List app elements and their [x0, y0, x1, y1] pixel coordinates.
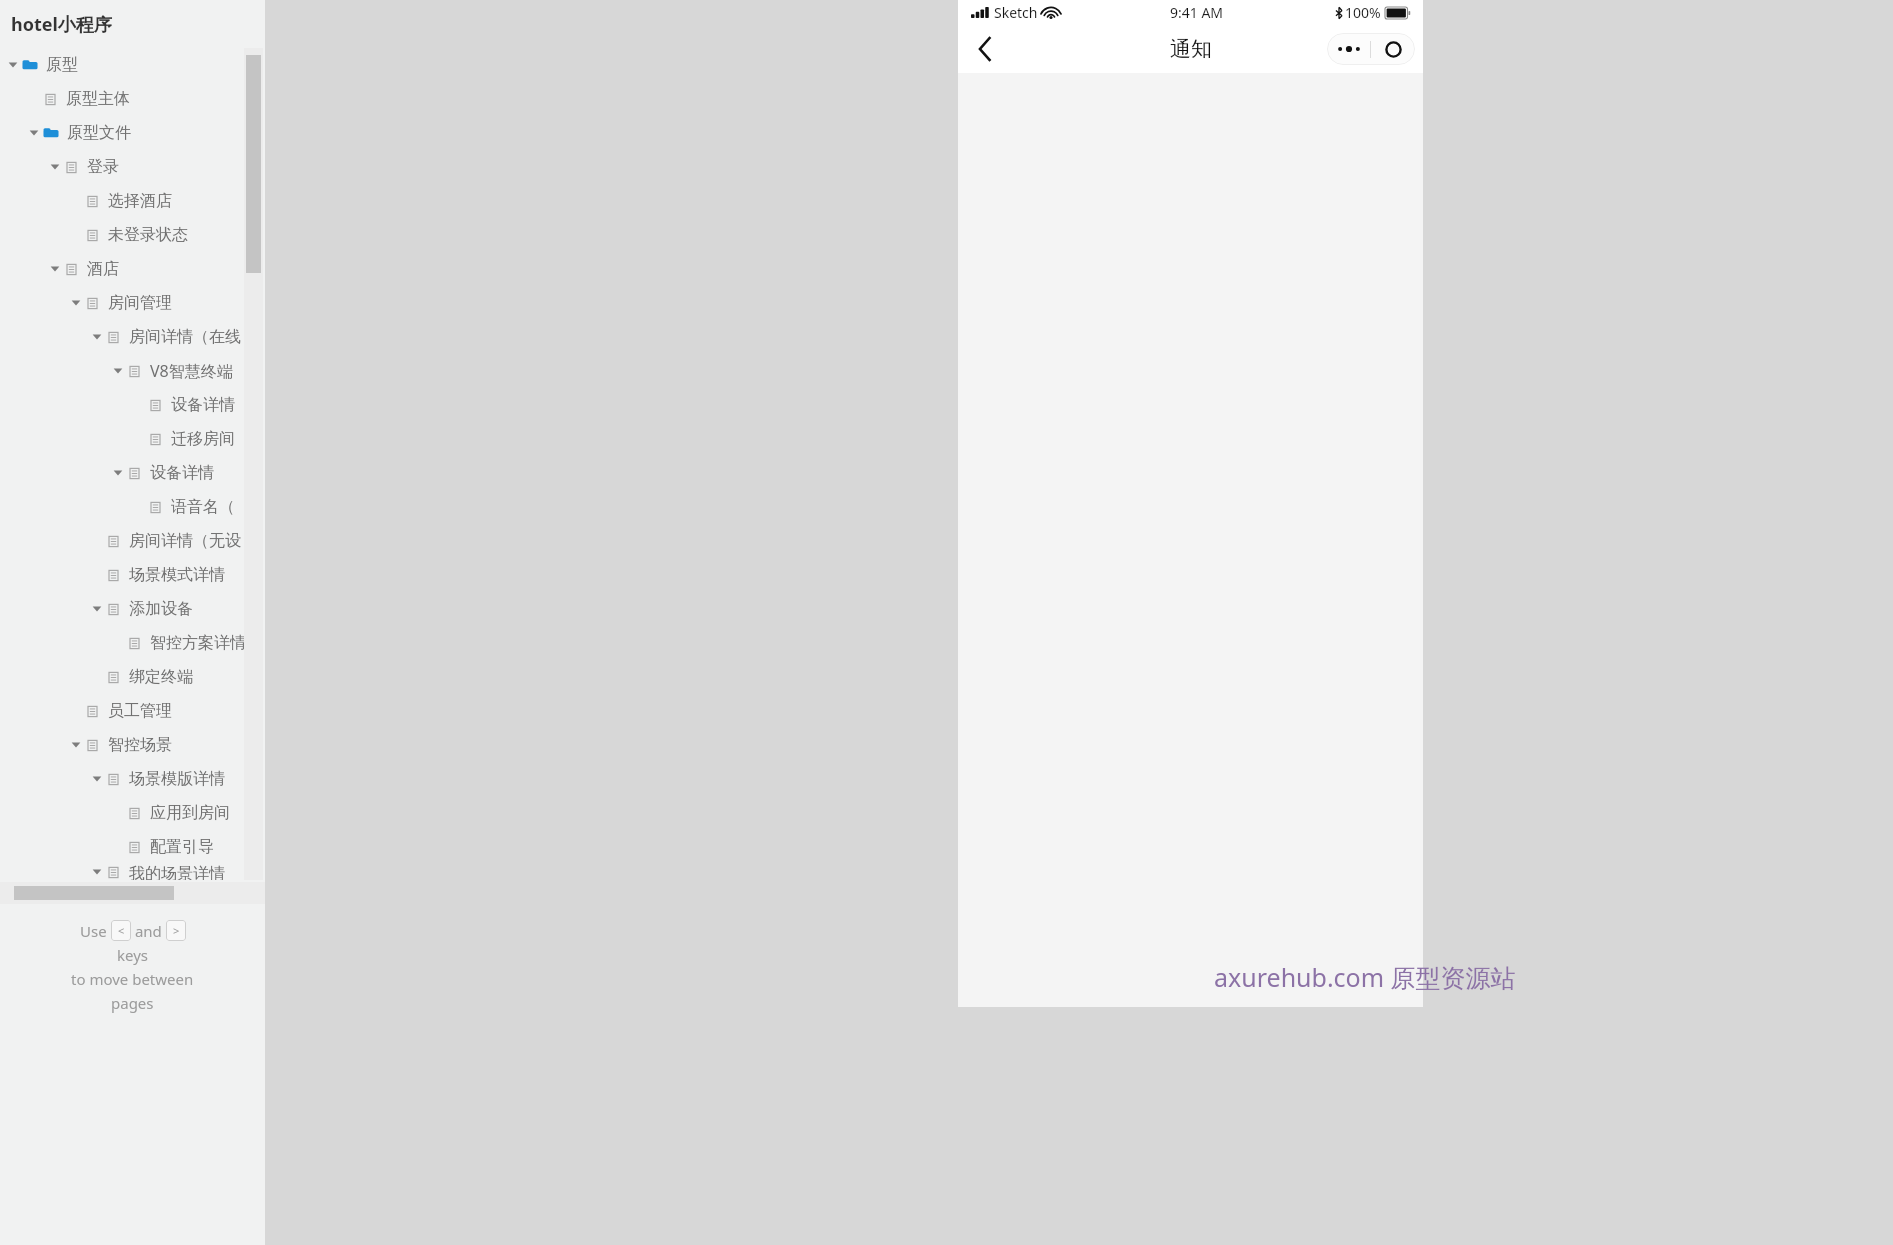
- button[interactable]: 登录: [0, 150, 265, 184]
- staticText: hotel小程序: [11, 12, 112, 37]
- button[interactable]: 设备详情: [0, 456, 265, 490]
- staticText: 原型: [46, 55, 78, 75]
- staticText: 绑定终端: [129, 667, 193, 687]
- button[interactable]: 迁移房间: [0, 422, 265, 456]
- button[interactable]: 场景模版详情: [0, 762, 265, 796]
- button[interactable]: 未登录状态: [0, 218, 265, 252]
- button[interactable]: V8智慧终端: [0, 354, 265, 388]
- staticText: and: [131, 921, 166, 941]
- button[interactable]: 绑定终端: [0, 660, 265, 694]
- staticText: 原型主体: [66, 89, 130, 109]
- staticText: 我的场景详情: [129, 864, 225, 880]
- staticText: 100%: [1345, 3, 1381, 22]
- button[interactable]: 原型主体: [0, 82, 265, 116]
- staticText: <: [118, 923, 125, 938]
- button[interactable]: 设备详情: [0, 388, 265, 422]
- staticText: keys: [117, 945, 149, 965]
- staticText: to move between: [71, 969, 194, 989]
- staticText: 智控场景: [108, 735, 172, 755]
- button[interactable]: 智控场景: [0, 728, 265, 762]
- button[interactable]: 原型文件: [0, 116, 265, 150]
- staticText: 员工管理: [108, 701, 172, 721]
- staticText: 未登录状态: [108, 225, 188, 245]
- button[interactable]: 应用到房间: [0, 796, 265, 830]
- button[interactable]: 房间详情（无设: [0, 524, 265, 558]
- staticText: V8智慧终端: [150, 360, 233, 382]
- staticText: 迁移房间: [171, 429, 235, 449]
- staticText: 场景模版详情: [129, 769, 225, 789]
- button[interactable]: 选择酒店: [0, 184, 265, 218]
- staticText: 智控方案详情: [150, 633, 246, 653]
- button[interactable]: 酒店: [0, 252, 265, 286]
- button[interactable]: 场景模式详情: [0, 558, 265, 592]
- staticText: 设备详情: [150, 463, 214, 483]
- staticText: 场景模式详情: [129, 565, 225, 585]
- button[interactable]: 员工管理: [0, 694, 265, 728]
- button[interactable]: 原型: [0, 48, 265, 82]
- staticText: 原型文件: [67, 123, 131, 143]
- staticText: Use: [80, 921, 111, 941]
- staticText: 酒店: [87, 259, 119, 279]
- staticText: 房间详情（无设: [129, 531, 241, 551]
- staticText: 房间管理: [108, 293, 172, 313]
- staticText: 设备详情: [171, 395, 235, 415]
- button[interactable]: 房间管理: [0, 286, 265, 320]
- button[interactable]: 配置引导: [0, 830, 265, 864]
- button[interactable]: 房间详情（在线: [0, 320, 265, 354]
- staticText: >: [173, 923, 180, 938]
- staticText: 配置引导: [150, 837, 214, 857]
- button[interactable]: 添加设备: [0, 592, 265, 626]
- button[interactable]: Menu: [1327, 33, 1415, 65]
- staticText: Sketch: [994, 3, 1038, 22]
- staticText: pages: [111, 993, 154, 1013]
- staticText: axurehub.com 原型资源站: [1214, 960, 1516, 994]
- button[interactable]: 智控方案详情: [0, 626, 265, 660]
- button[interactable]: 语音名（: [0, 490, 265, 524]
- staticText: 添加设备: [129, 599, 193, 619]
- staticText: 房间详情（在线: [129, 327, 241, 347]
- staticText: 9:41 AM: [1170, 3, 1224, 22]
- staticText: 语音名（: [171, 497, 235, 517]
- button[interactable]: Back: [964, 28, 1006, 70]
- staticText: 登录: [87, 157, 119, 177]
- staticText: 应用到房间: [150, 803, 230, 823]
- button[interactable]: 我的场景详情: [0, 864, 265, 880]
- staticText: 选择酒店: [108, 191, 172, 211]
- staticText: 通知: [1170, 36, 1212, 62]
